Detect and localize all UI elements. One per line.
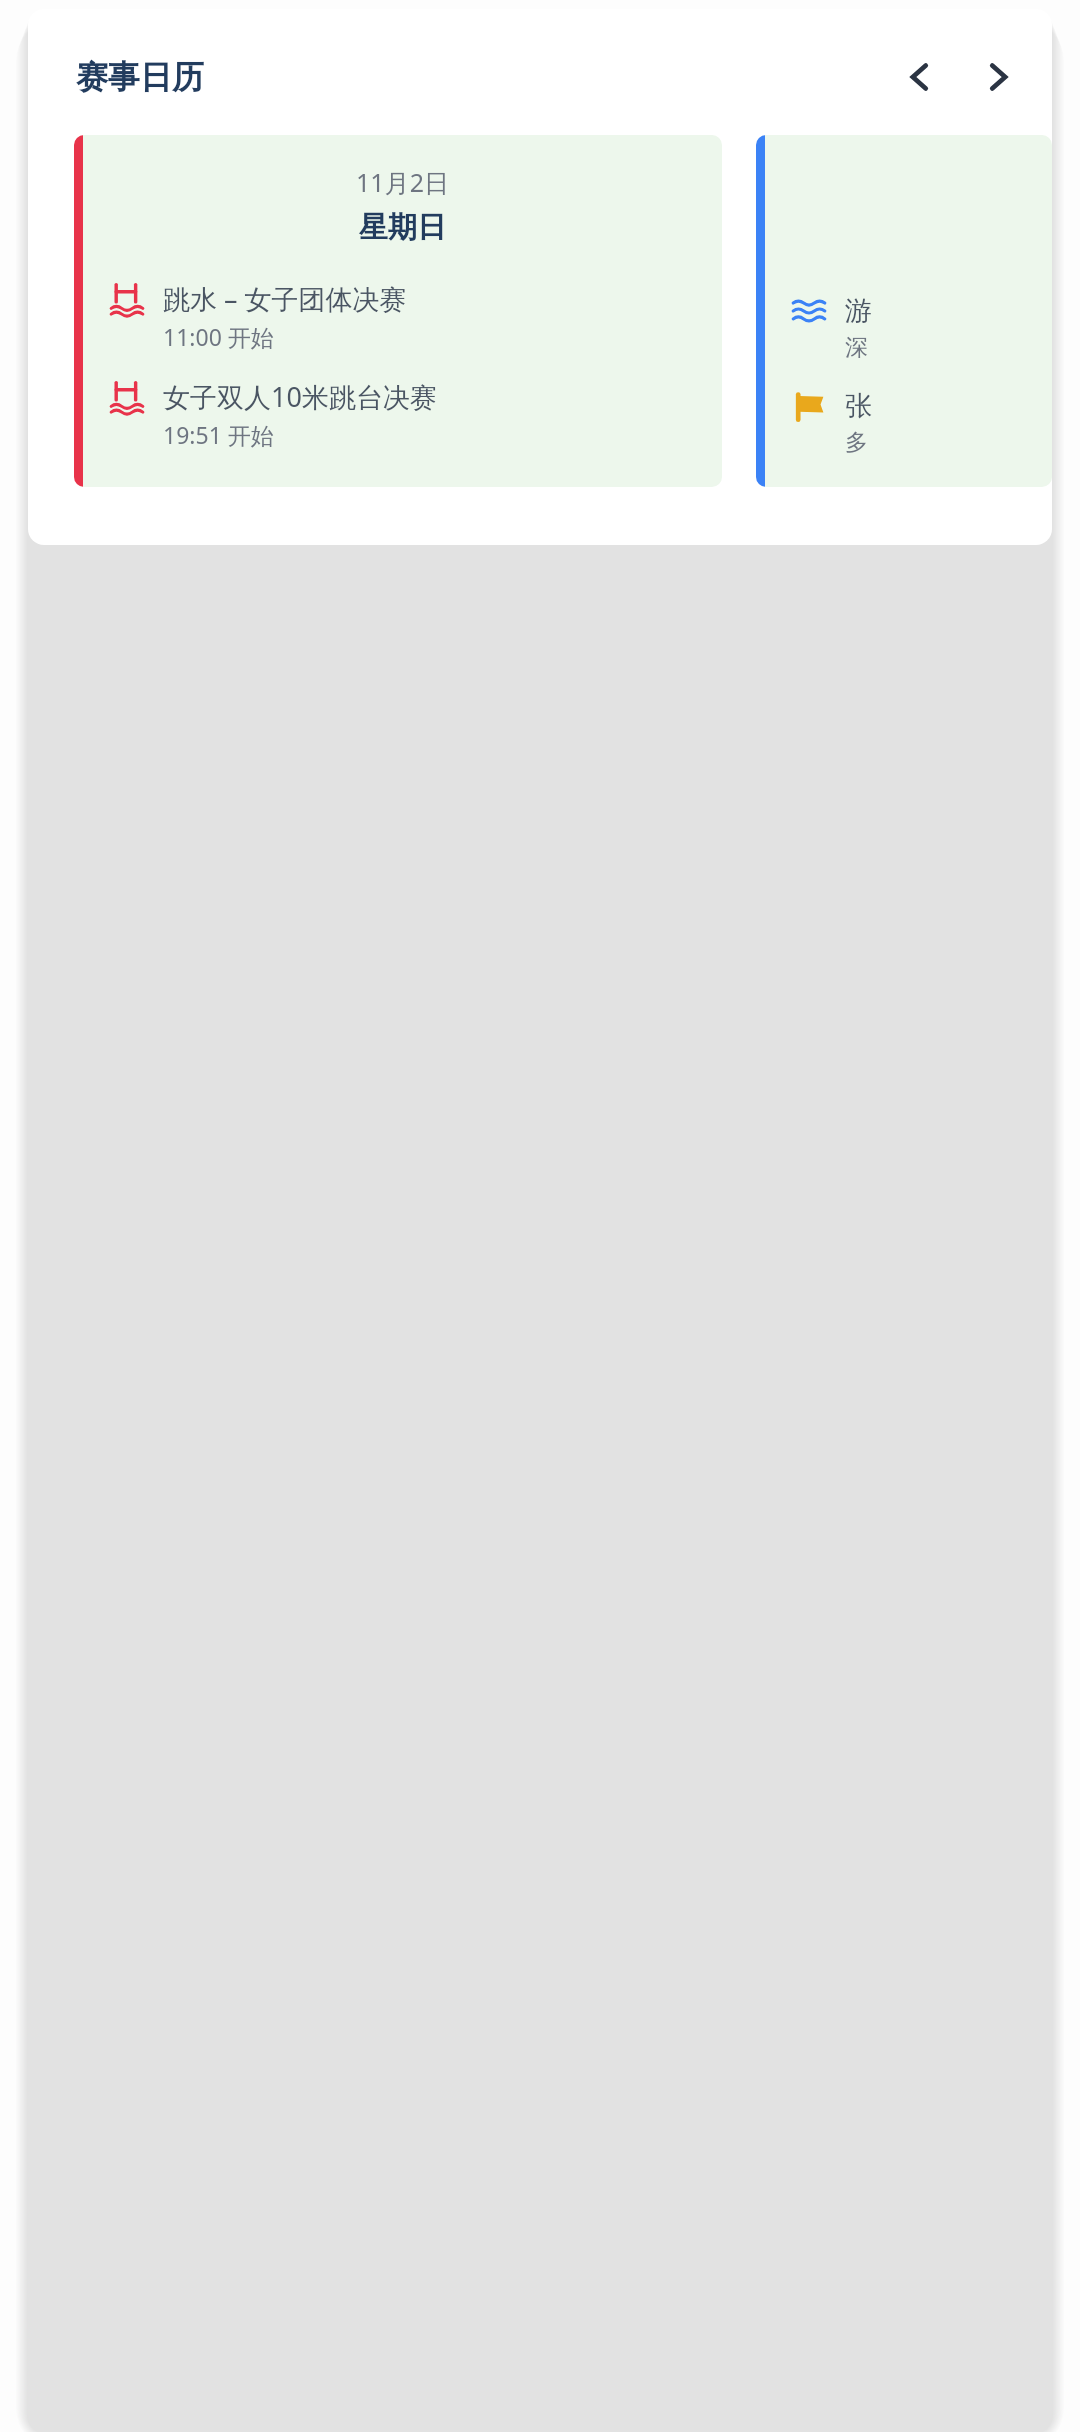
staticText: 11:00 开始 bbox=[163, 321, 274, 352]
button[interactable]: 下一页 bbox=[970, 49, 1026, 105]
staticText: 19:51 开始 bbox=[163, 419, 274, 450]
staticText: 女子双人10米跳台决赛 bbox=[163, 378, 437, 415]
staticText: 多 bbox=[845, 428, 868, 457]
staticText: 11月2日 bbox=[83, 165, 722, 199]
button[interactable]: 游 bbox=[756, 135, 1052, 487]
button[interactable]: 上一页 bbox=[892, 49, 948, 105]
staticText: 跳水 – 女子团体决赛 bbox=[163, 280, 407, 317]
staticText: 深 bbox=[845, 333, 868, 362]
button[interactable]: 11月2日 bbox=[74, 135, 722, 487]
staticText: 张 bbox=[845, 389, 872, 423]
staticText: 游 bbox=[845, 294, 872, 328]
staticText: 星期日 bbox=[83, 209, 722, 246]
staticText: 赛事日历 bbox=[76, 57, 204, 97]
